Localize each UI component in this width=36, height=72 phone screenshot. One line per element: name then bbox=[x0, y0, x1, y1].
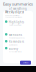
staticText: A short recap of what bbox=[5, 14, 19, 16]
button[interactable]: Highlights bbox=[5, 20, 31, 26]
staticText: Continue bbox=[22, 62, 28, 64]
staticText: Mentions bbox=[9, 33, 22, 37]
button[interactable]: Mentions bbox=[5, 33, 31, 39]
staticText: Highlights bbox=[9, 20, 24, 24]
staticText: changed since last week. bbox=[5, 16, 22, 18]
staticText: Easy summaries bbox=[3, 1, 33, 7]
staticText: Top three updates bbox=[9, 24, 22, 26]
button[interactable]: Continue bbox=[20, 61, 31, 65]
staticText: Activity bbox=[9, 47, 18, 50]
staticText: Weekly digest bbox=[5, 10, 24, 14]
button[interactable]: Activity bbox=[5, 47, 31, 53]
staticText: Reminders bbox=[9, 40, 24, 43]
staticText: Across all projects bbox=[9, 51, 22, 53]
staticText: of everything bbox=[9, 7, 27, 10]
staticText: Due this week bbox=[9, 44, 18, 46]
button[interactable]: Reminders bbox=[5, 40, 31, 46]
